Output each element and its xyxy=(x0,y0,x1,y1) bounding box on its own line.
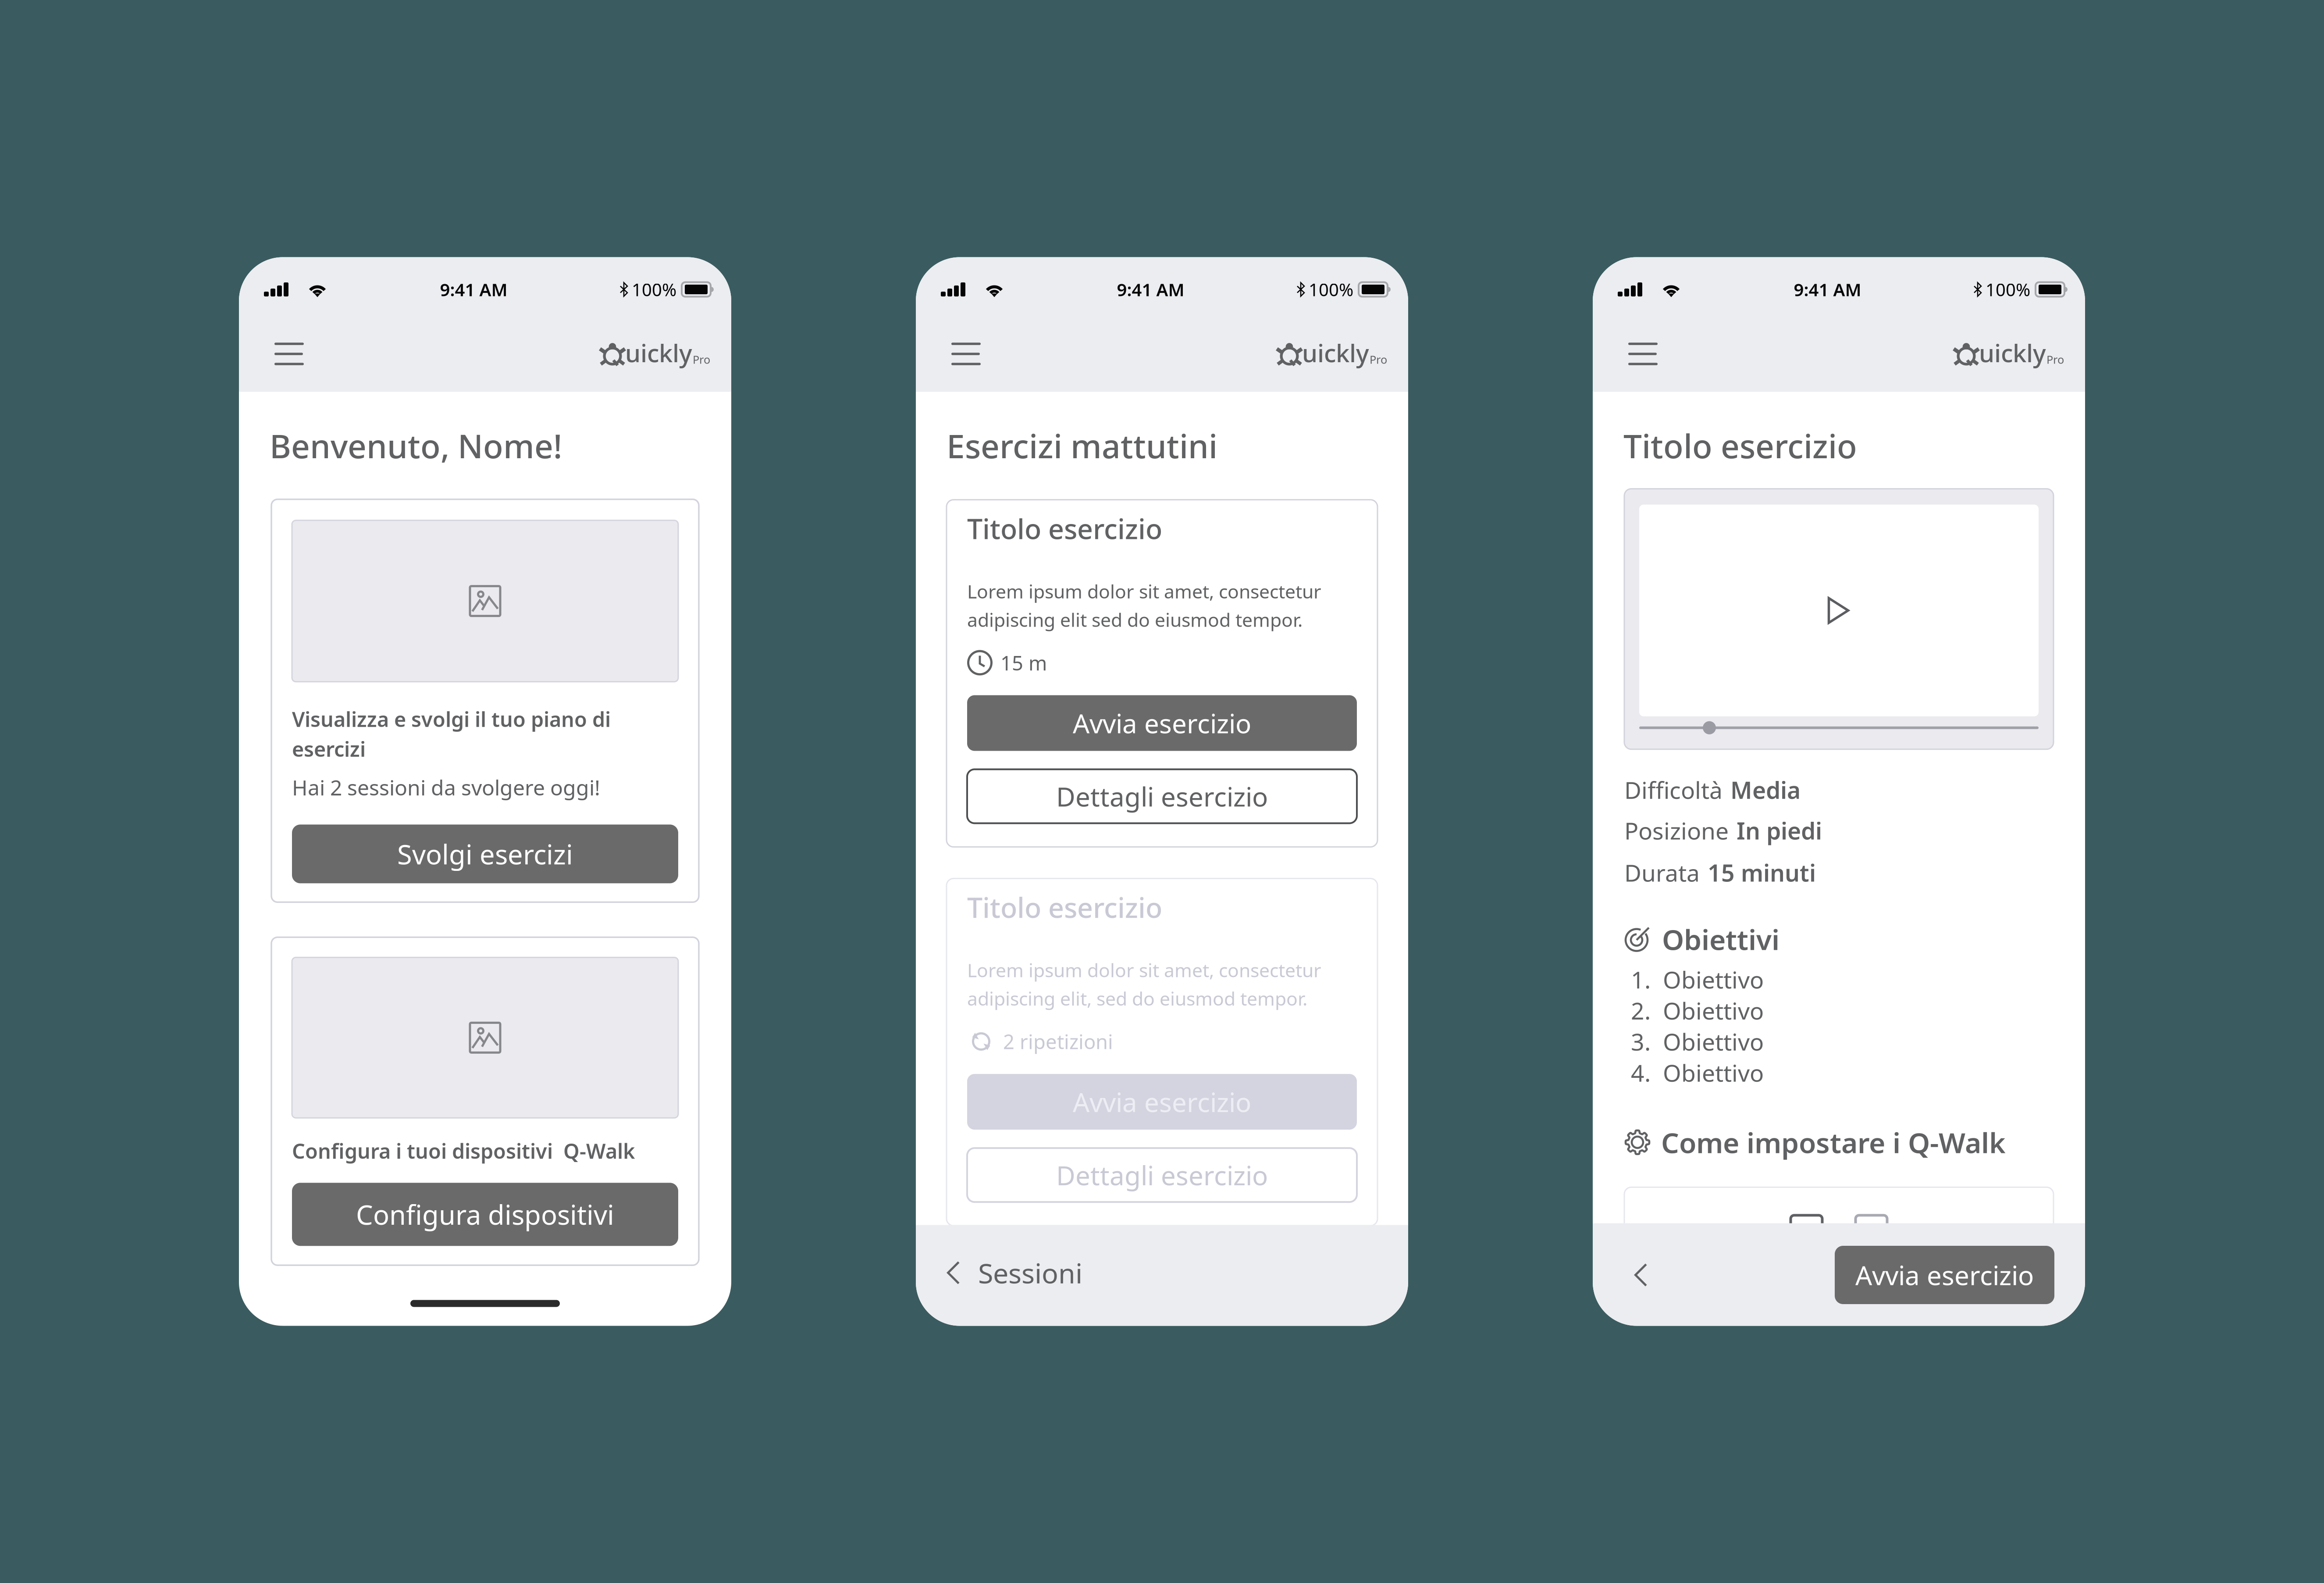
button[interactable]: Quickly Pro xyxy=(598,334,731,392)
staticText: Configura i tuoi dispositivi Q-Walk xyxy=(292,1137,635,1164)
staticText: Lorem ipsum dolor sit amet, consectetur … xyxy=(967,958,1321,1011)
staticText: uickly xyxy=(1979,336,2046,369)
staticText: 9:41 AM xyxy=(1117,278,1184,301)
button[interactable]: Dettagli esercizio xyxy=(967,769,1357,823)
button[interactable]: Avvia esercizio xyxy=(1835,1246,2054,1304)
staticText: Pro xyxy=(693,352,710,367)
staticText: Sessioni xyxy=(978,1255,1082,1291)
button[interactable]: Menu xyxy=(239,334,317,392)
staticText: uickly xyxy=(1302,336,1369,369)
staticText: Dettagli esercizio xyxy=(1056,1158,1268,1193)
staticText: Benvenuto, Nome! xyxy=(270,424,562,467)
button[interactable]: Menu xyxy=(916,334,994,392)
staticText: Come impostare i Q-Walk xyxy=(1661,1124,2006,1161)
staticText: Titolo esercizio xyxy=(967,889,1162,926)
button[interactable]: Sessioni xyxy=(916,1225,1408,1326)
staticText: Avvia esercizio xyxy=(1855,1257,2034,1292)
staticText: In piedi xyxy=(1737,815,1822,846)
staticText: 1. Obiettivo xyxy=(1631,964,1764,995)
staticText: Titolo esercizio xyxy=(1623,424,1857,467)
staticText: Svolgi esercizi xyxy=(397,836,573,872)
button[interactable]: Configura dispositivi xyxy=(292,1183,678,1246)
button[interactable]: Svolgi esercizi xyxy=(292,825,678,883)
staticText: 4. Obiettivo xyxy=(1631,1057,1764,1088)
button[interactable]: Avvia esercizio xyxy=(967,695,1357,751)
staticText: 100% xyxy=(1309,278,1353,301)
staticText: Dettagli esercizio xyxy=(1056,779,1268,814)
staticText: 100% xyxy=(1986,278,2030,301)
button[interactable]: Indietro xyxy=(1593,1244,1664,1306)
staticText: Titolo esercizio xyxy=(967,510,1162,547)
staticText: 100% xyxy=(632,278,676,301)
button[interactable]: Avvia esercizio xyxy=(967,1074,1357,1130)
staticText: 15 m xyxy=(1000,650,1047,676)
staticText: Visualizza e svolgi il tuo piano di eser… xyxy=(292,705,611,762)
staticText: Difficoltà xyxy=(1624,774,1723,805)
staticText: 2. Obiettivo xyxy=(1631,995,1764,1026)
staticText: Configura dispositivi xyxy=(356,1197,614,1232)
staticText: Avvia esercizio xyxy=(1073,1084,1251,1119)
staticText: uickly xyxy=(625,336,692,369)
staticText: 15 minuti xyxy=(1708,857,1816,888)
staticText: Esercizi mattutini xyxy=(947,424,1217,467)
staticText: Media xyxy=(1730,774,1801,805)
button[interactable]: Menu xyxy=(1593,334,1671,392)
staticText: Lorem ipsum dolor sit amet, consectetur … xyxy=(967,579,1321,632)
staticText: Hai 2 sessioni da svolgere oggi! xyxy=(292,773,600,801)
staticText: Obiettivi xyxy=(1662,920,1779,958)
staticText: 2 ripetizioni xyxy=(1003,1028,1113,1055)
button[interactable]: Quickly Pro xyxy=(1952,334,2085,392)
staticText: Pro xyxy=(2046,352,2064,367)
staticText: Durata xyxy=(1624,857,1700,888)
staticText: Pro xyxy=(1370,352,1387,367)
button[interactable]: Quickly Pro xyxy=(1275,334,1408,392)
staticText: 9:41 AM xyxy=(1794,278,1861,301)
button[interactable]: Dettagli esercizio xyxy=(967,1148,1357,1202)
staticText: 9:41 AM xyxy=(440,278,507,301)
staticText: Posizione xyxy=(1624,815,1729,846)
staticText: 3. Obiettivo xyxy=(1631,1026,1764,1057)
staticText: Avvia esercizio xyxy=(1073,706,1251,741)
